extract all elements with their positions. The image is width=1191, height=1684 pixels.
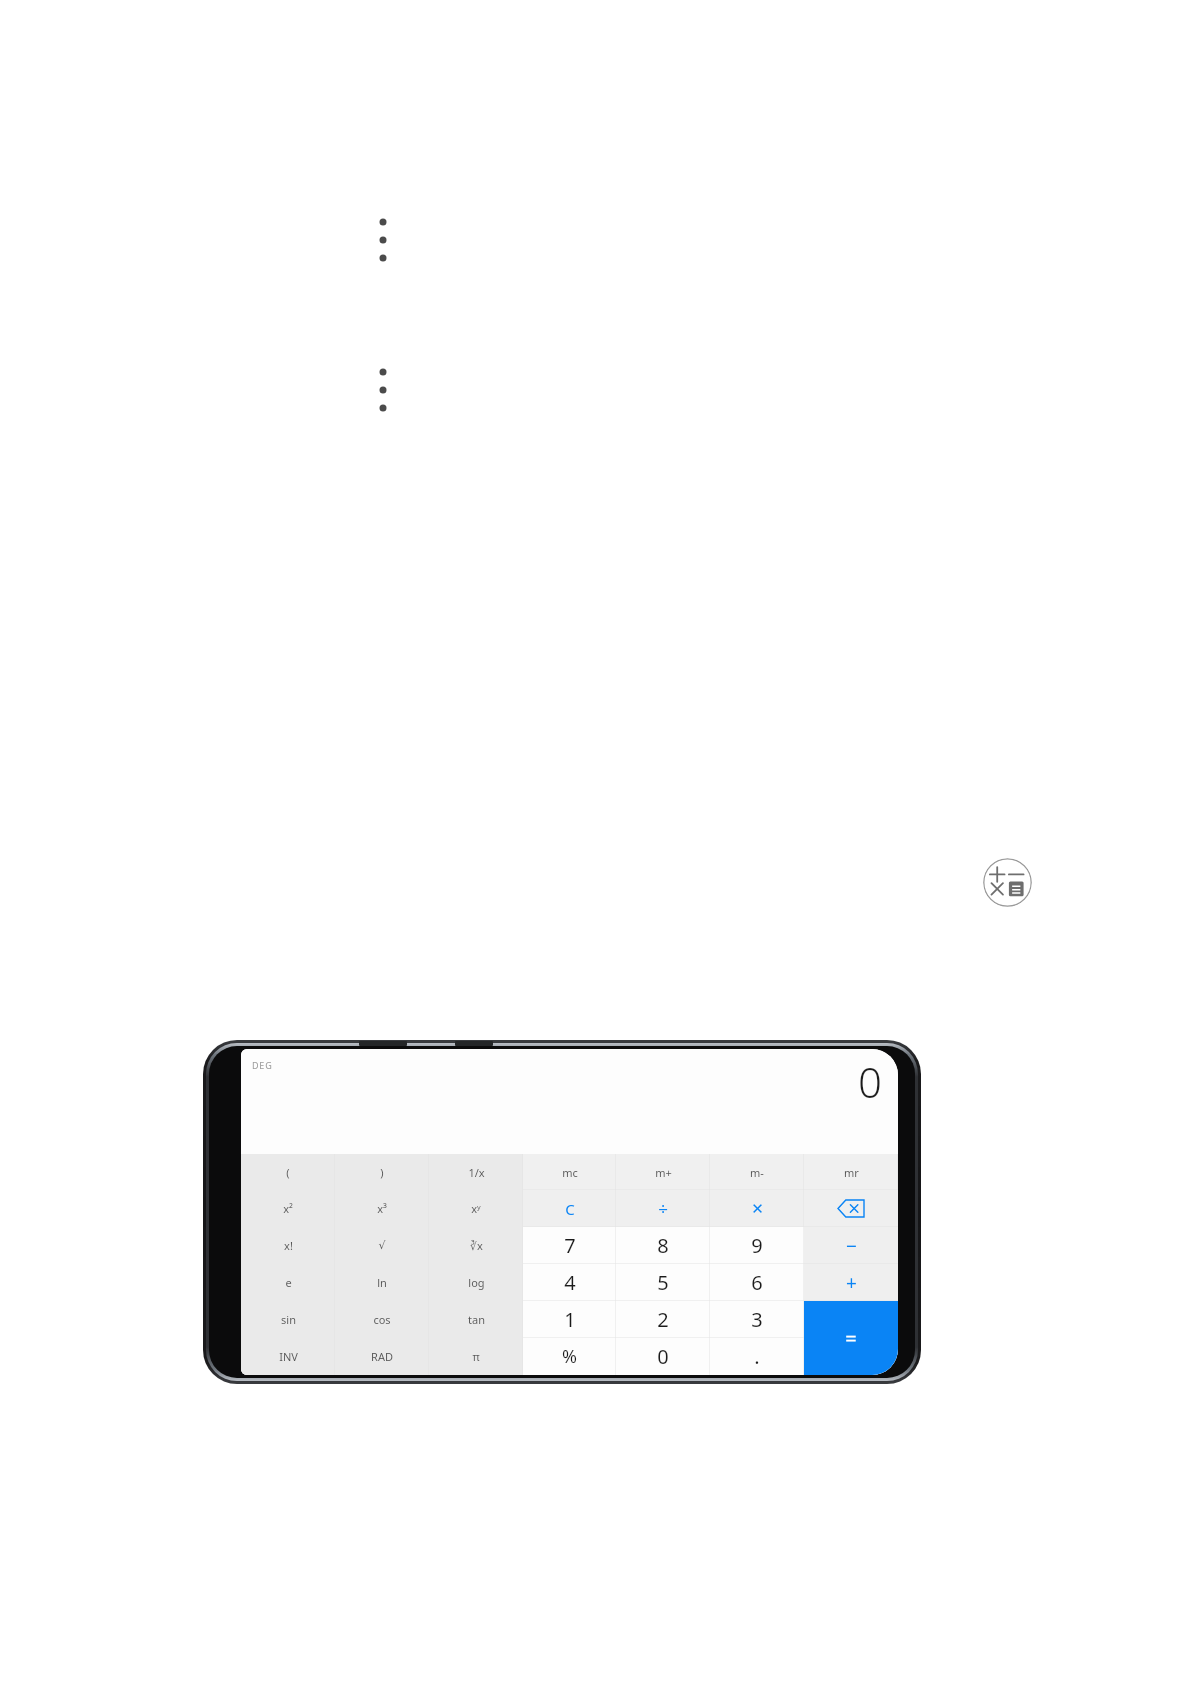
staticText: 4: [564, 1269, 576, 1296]
staticText: √: [378, 1239, 386, 1252]
button[interactable]: 0: [616, 1338, 710, 1375]
button[interactable]: ✕: [710, 1190, 804, 1227]
button[interactable]: √: [335, 1227, 429, 1264]
staticText: RAD: [371, 1349, 393, 1364]
button[interactable]: INV: [241, 1338, 335, 1375]
button[interactable]: ÷: [616, 1190, 710, 1227]
button[interactable]: e: [241, 1264, 335, 1301]
button[interactable]: m-: [710, 1154, 804, 1190]
staticText: 0: [657, 1343, 669, 1370]
button[interactable]: 3: [710, 1301, 804, 1338]
staticText: sin: [281, 1312, 296, 1327]
staticText: xʸ: [471, 1201, 481, 1216]
button[interactable]: 1: [523, 1301, 616, 1338]
staticText: m+: [655, 1165, 672, 1180]
staticText: ✕: [751, 1200, 764, 1217]
staticText: 5: [657, 1269, 669, 1296]
staticText: ): [380, 1165, 384, 1180]
staticText: +: [846, 1270, 857, 1296]
button[interactable]: (: [241, 1154, 335, 1190]
button[interactable]: −: [804, 1227, 898, 1264]
staticText: C: [565, 1199, 575, 1219]
button[interactable]: tan: [429, 1301, 523, 1338]
staticText: (: [286, 1165, 290, 1180]
button[interactable]: xʸ: [429, 1190, 523, 1227]
staticText: DEG: [252, 1059, 273, 1071]
button[interactable]: RAD: [335, 1338, 429, 1375]
button[interactable]: cos: [335, 1301, 429, 1338]
staticText: x³: [377, 1201, 387, 1216]
staticText: 6: [751, 1269, 763, 1296]
staticText: =: [845, 1325, 857, 1352]
staticText: tan: [468, 1312, 485, 1327]
staticText: 7: [564, 1232, 576, 1259]
button[interactable]: More options menu: [370, 363, 396, 417]
button[interactable]: ln: [335, 1264, 429, 1301]
staticText: m-: [750, 1165, 764, 1180]
staticText: ÷: [658, 1197, 668, 1220]
staticText: −: [846, 1233, 857, 1259]
button[interactable]: π: [429, 1338, 523, 1375]
staticText: 2: [657, 1306, 669, 1333]
button[interactable]: x²: [241, 1190, 335, 1227]
staticText: 1/x: [468, 1165, 485, 1180]
button[interactable]: m+: [616, 1154, 710, 1190]
button[interactable]: Calculator app: [983, 858, 1032, 907]
button[interactable]: mr: [804, 1154, 898, 1190]
staticText: e: [285, 1275, 292, 1290]
button[interactable]: 8: [616, 1227, 710, 1264]
staticText: 0: [858, 1053, 882, 1110]
staticText: .: [754, 1343, 760, 1370]
button[interactable]: x!: [241, 1227, 335, 1264]
button[interactable]: 7: [523, 1227, 616, 1264]
staticText: 8: [657, 1232, 669, 1259]
staticText: 3: [751, 1306, 763, 1333]
button[interactable]: ∛x: [429, 1227, 523, 1264]
button[interactable]: 2: [616, 1301, 710, 1338]
staticText: cos: [373, 1312, 391, 1327]
button[interactable]: =: [804, 1301, 898, 1375]
staticText: ∛x: [470, 1238, 483, 1253]
button[interactable]: +: [804, 1264, 898, 1301]
button[interactable]: More options: [370, 213, 396, 267]
button[interactable]: sin: [241, 1301, 335, 1338]
staticText: π: [472, 1349, 480, 1364]
button[interactable]: 6: [710, 1264, 804, 1301]
staticText: %: [562, 1344, 577, 1369]
button[interactable]: .: [710, 1338, 804, 1375]
button[interactable]: 4: [523, 1264, 616, 1301]
button[interactable]: 5: [616, 1264, 710, 1301]
button[interactable]: %: [523, 1338, 616, 1375]
button[interactable]: 9: [710, 1227, 804, 1264]
staticText: ln: [377, 1275, 387, 1290]
button[interactable]: Backspace: [804, 1190, 898, 1227]
button[interactable]: log: [429, 1264, 523, 1301]
staticText: 1: [564, 1306, 576, 1333]
button[interactable]: x³: [335, 1190, 429, 1227]
staticText: 9: [751, 1232, 763, 1259]
staticText: log: [468, 1275, 485, 1290]
staticText: mr: [844, 1165, 859, 1180]
staticText: x²: [283, 1201, 293, 1216]
button[interactable]: 1/x: [429, 1154, 523, 1190]
button[interactable]: mc: [523, 1154, 616, 1190]
button[interactable]: ): [335, 1154, 429, 1190]
staticText: x!: [284, 1238, 293, 1253]
staticText: mc: [562, 1165, 578, 1180]
staticText: INV: [279, 1349, 298, 1364]
button[interactable]: C: [523, 1190, 616, 1227]
